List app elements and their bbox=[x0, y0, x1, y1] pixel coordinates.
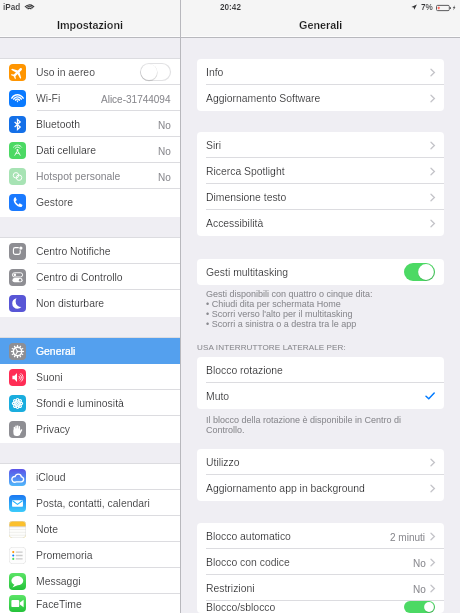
button[interactable]: Blocco con codice bbox=[197, 549, 444, 575]
staticText: Non disturbare bbox=[36, 298, 105, 310]
button[interactable]: Non disturbare bbox=[0, 290, 180, 316]
button[interactable]: Dati cellulare bbox=[0, 137, 180, 163]
button[interactable]: Info bbox=[197, 59, 444, 85]
button[interactable]: Generali bbox=[0, 338, 180, 364]
button[interactable]: Centro di Controllo bbox=[0, 264, 180, 290]
staticText: No bbox=[158, 172, 171, 183]
staticText: Il blocco della rotazione è disponibile … bbox=[206, 415, 402, 425]
staticText: Hotspot personale bbox=[36, 171, 121, 183]
button[interactable]: Posta, contatti, calendari bbox=[0, 490, 180, 516]
staticText: USA INTERRUTTORE LATERALE PER: bbox=[197, 343, 346, 352]
staticText: Generali bbox=[299, 19, 343, 31]
button[interactable]: Restrizioni bbox=[197, 575, 444, 601]
staticText: Restrizioni bbox=[206, 583, 255, 595]
staticText: No bbox=[158, 146, 171, 157]
button[interactable]: Promemoria bbox=[0, 542, 180, 568]
staticText: Centro di Controllo bbox=[36, 272, 123, 284]
button[interactable]: FaceTime bbox=[0, 594, 180, 613]
staticText: Blocco/sblocco bbox=[206, 602, 276, 613]
button[interactable]: Toggle on bbox=[404, 263, 435, 281]
staticText: FaceTime bbox=[36, 599, 82, 611]
staticText: No bbox=[413, 558, 426, 569]
button[interactable]: Hotspot personale bbox=[0, 163, 180, 189]
button[interactable]: Siri bbox=[197, 132, 444, 158]
staticText: Aggiornamento app in background bbox=[206, 483, 365, 495]
button[interactable]: Note bbox=[0, 516, 180, 542]
staticText: • Scorri verso l'alto per il multitaskin… bbox=[206, 309, 353, 319]
staticText: 2 minuti bbox=[390, 532, 426, 543]
button[interactable]: Aggiornamento app in background bbox=[197, 475, 444, 501]
staticText: Dati cellulare bbox=[36, 145, 97, 157]
staticText: Muto bbox=[206, 391, 230, 403]
staticText: Sfondi e luminosità bbox=[36, 398, 124, 410]
staticText: • Chiudi dita per schermata Home bbox=[206, 299, 341, 309]
button[interactable]: Privacy bbox=[0, 416, 180, 442]
staticText: Utilizzo bbox=[206, 457, 240, 469]
button[interactable]: Blocco automatico bbox=[197, 523, 444, 549]
staticText: Dimensione testo bbox=[206, 192, 287, 204]
button[interactable]: Uso in aereo bbox=[0, 59, 180, 85]
button[interactable]: Sfondi e luminosità bbox=[0, 390, 180, 416]
button[interactable]: Blocco rotazione bbox=[197, 357, 444, 383]
button[interactable]: iCloud bbox=[0, 464, 180, 490]
staticText: Gesti disponibili con quattro o cinque d… bbox=[206, 289, 373, 299]
staticText: Centro Notifiche bbox=[36, 246, 111, 258]
staticText: Blocco con codice bbox=[206, 557, 290, 569]
button[interactable]: Bluetooth bbox=[0, 111, 180, 137]
staticText: No bbox=[413, 584, 426, 595]
staticText: No bbox=[158, 120, 171, 131]
button[interactable]: Utilizzo bbox=[197, 449, 444, 475]
button[interactable]: Toggle on bbox=[404, 601, 435, 613]
staticText: Controllo. bbox=[206, 425, 245, 435]
button[interactable]: Blocco/sblocco bbox=[197, 601, 444, 613]
staticText: Wi-Fi bbox=[36, 93, 61, 105]
staticText: • Scorri a sinistra o a destra tra le ap… bbox=[206, 319, 357, 329]
staticText: Bluetooth bbox=[36, 119, 80, 131]
staticText: 7% bbox=[421, 3, 433, 12]
staticText: Note bbox=[36, 524, 58, 536]
button[interactable]: Toggle off bbox=[140, 63, 171, 81]
staticText: Info bbox=[206, 67, 224, 79]
button[interactable]: Centro Notifiche bbox=[0, 238, 180, 264]
staticText: Promemoria bbox=[36, 550, 93, 562]
button[interactable]: Messaggi bbox=[0, 568, 180, 594]
staticText: Blocco automatico bbox=[206, 531, 291, 543]
button[interactable]: Muto bbox=[197, 383, 444, 409]
staticText: 20:42 bbox=[220, 3, 241, 12]
staticText: Posta, contatti, calendari bbox=[36, 498, 150, 510]
staticText: Blocco rotazione bbox=[206, 365, 283, 377]
button[interactable]: Ricerca Spotlight bbox=[197, 158, 444, 184]
staticText: Alice-31744094 bbox=[101, 94, 171, 105]
staticText: Impostazioni bbox=[57, 19, 123, 31]
button[interactable]: Wi-Fi bbox=[0, 85, 180, 111]
button[interactable]: Gestore bbox=[0, 189, 180, 215]
button[interactable]: Gesti multitasking bbox=[197, 259, 444, 285]
staticText: Uso in aereo bbox=[36, 67, 95, 79]
button[interactable]: Dimensione testo bbox=[197, 184, 444, 210]
staticText: Accessibilità bbox=[206, 218, 264, 230]
staticText: Gesti multitasking bbox=[206, 267, 288, 279]
staticText: Siri bbox=[206, 140, 222, 152]
staticText: Privacy bbox=[36, 424, 71, 436]
button[interactable]: Aggiornamento Software bbox=[197, 85, 444, 111]
staticText: Generali bbox=[36, 346, 76, 358]
staticText: Messaggi bbox=[36, 576, 81, 588]
staticText: iCloud bbox=[36, 472, 66, 484]
staticText: Ricerca Spotlight bbox=[206, 166, 285, 178]
staticText: Gestore bbox=[36, 197, 73, 209]
staticText: Aggiornamento Software bbox=[206, 93, 321, 105]
button[interactable]: Accessibilità bbox=[197, 210, 444, 236]
staticText: iPad bbox=[3, 3, 21, 12]
staticText: Suoni bbox=[36, 372, 63, 384]
button[interactable]: Suoni bbox=[0, 364, 180, 390]
